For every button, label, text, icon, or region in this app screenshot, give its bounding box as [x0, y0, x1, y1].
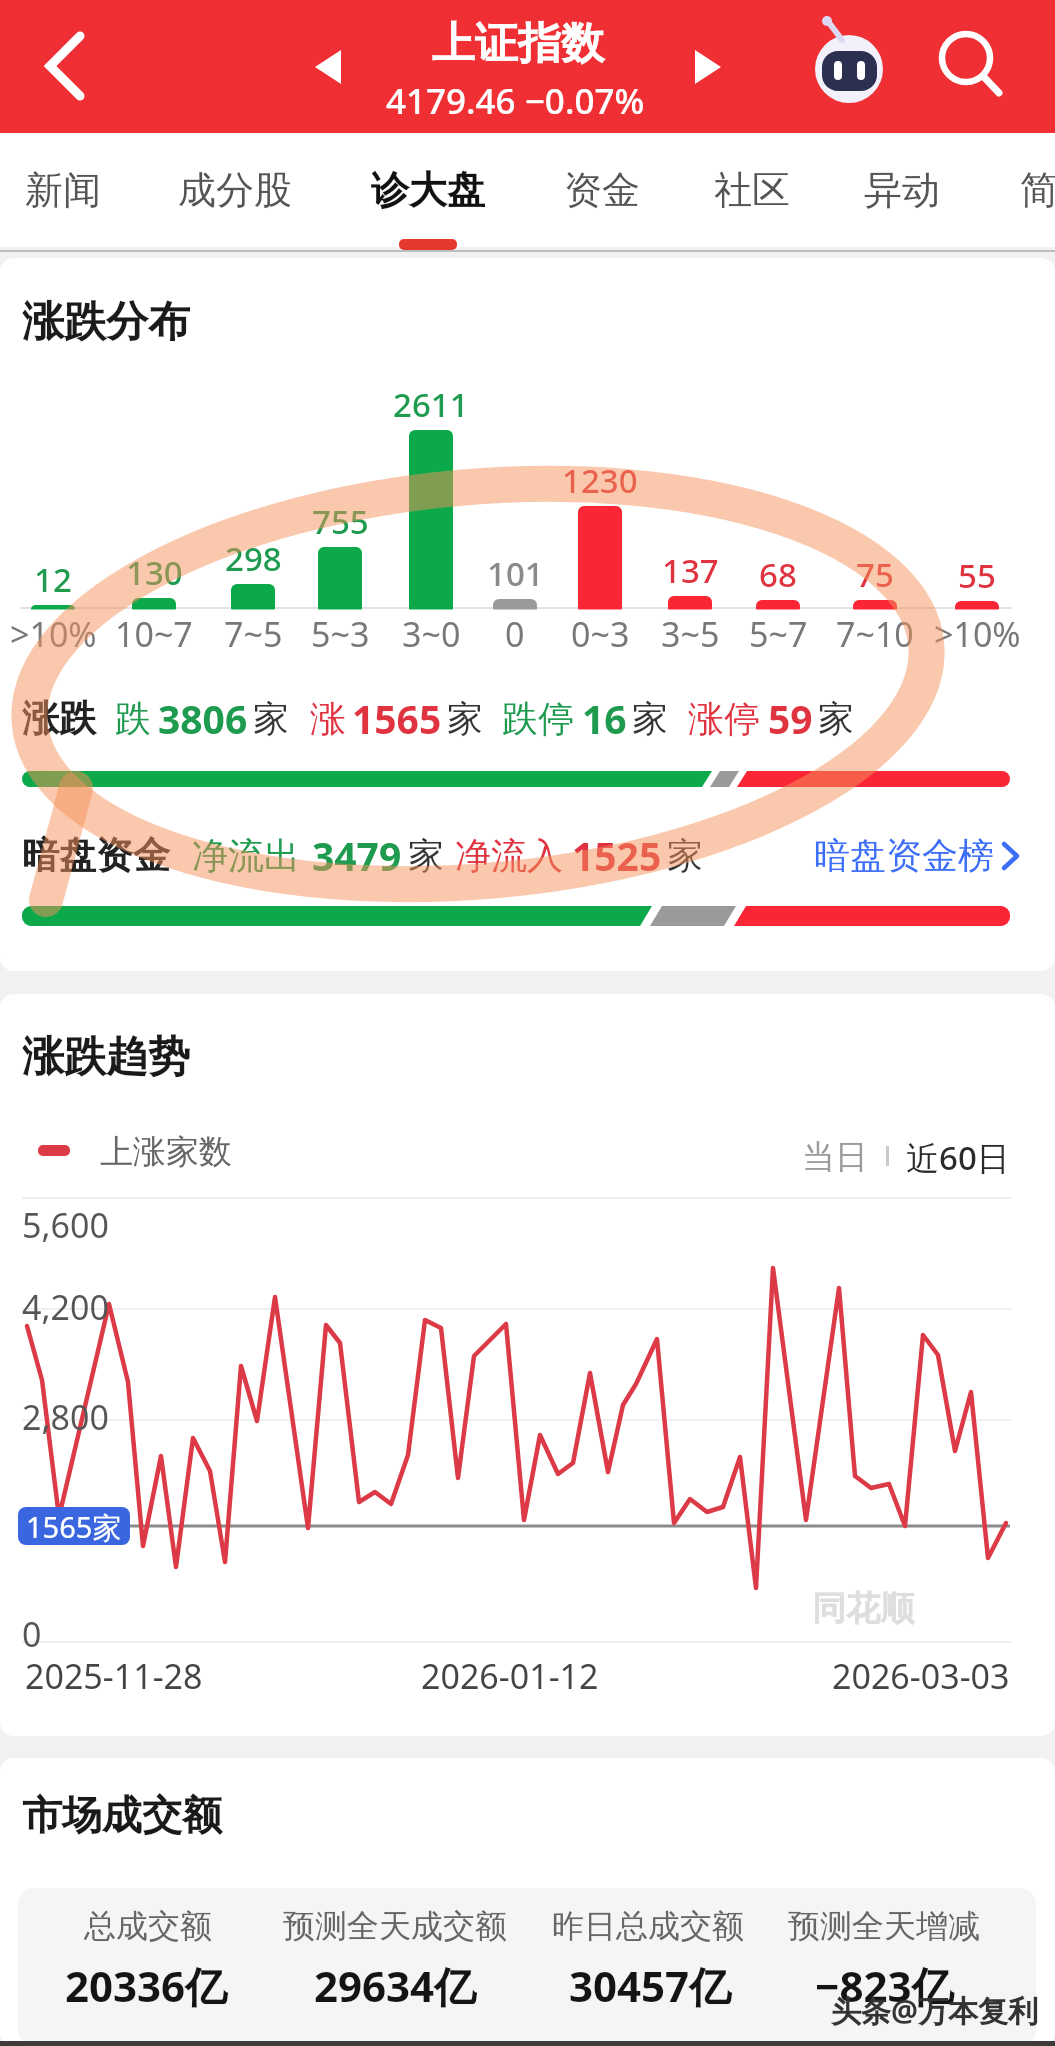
staticText: 0: [22, 1611, 42, 1657]
button[interactable]: [30, 30, 100, 100]
button[interactable]: 新闻: [0, 150, 138, 230]
staticText: 简: [1020, 166, 1055, 214]
staticText: 298: [225, 536, 282, 581]
staticText: 社区: [714, 166, 790, 214]
staticText: 3~0: [402, 611, 461, 657]
staticText: 头条@万本复利: [831, 1990, 1038, 2031]
button[interactable]: [935, 28, 1005, 98]
staticText: 7~5: [224, 611, 283, 657]
staticText: 暗盘资金榜: [814, 833, 994, 878]
button[interactable]: [305, 40, 355, 94]
staticText: 3806: [158, 692, 248, 745]
staticText: 5~3: [311, 611, 370, 657]
staticText: 涨停: [688, 696, 760, 741]
staticText: 家: [818, 696, 854, 741]
staticText: 跌停: [502, 696, 574, 741]
staticText: 4,200: [22, 1284, 109, 1330]
staticText: 2,800: [22, 1394, 109, 1440]
staticText: 2611: [393, 382, 469, 427]
button[interactable]: 成分股: [160, 150, 310, 230]
staticText: 净流出: [192, 833, 300, 878]
staticText: 涨跌趋势: [22, 1031, 190, 1084]
staticText: 上涨家数: [100, 1131, 232, 1173]
staticText: 近60日: [906, 1135, 1010, 1180]
staticText: 上证指数: [432, 17, 604, 71]
button[interactable]: 暗盘资金榜: [800, 825, 1020, 885]
staticText: 同花顺: [812, 1587, 914, 1630]
staticText: 1565: [352, 692, 442, 745]
staticText: 2025-11-28: [25, 1653, 203, 1699]
staticText: 家: [408, 833, 444, 878]
staticText: 12: [34, 557, 72, 602]
staticText: 10~7: [115, 611, 193, 657]
staticText: 7~10: [836, 611, 914, 657]
staticText: 1525: [572, 829, 662, 882]
staticText: 市场成交额: [22, 1790, 222, 1840]
staticText: 5~7: [749, 611, 808, 657]
staticText: −823亿: [815, 1957, 954, 2014]
button[interactable]: 当日: [780, 1127, 890, 1187]
staticText: 涨跌分布: [22, 296, 190, 349]
staticText: 55: [958, 553, 996, 598]
staticText: 2026-03-03: [832, 1653, 1010, 1699]
staticText: 30457亿: [569, 1957, 732, 2014]
staticText: 当日: [802, 1136, 868, 1178]
staticText: >10%: [934, 611, 1021, 657]
staticText: 暗盘资金: [22, 832, 170, 879]
staticText: 成分股: [178, 166, 292, 214]
button[interactable]: [685, 40, 735, 94]
staticText: 137: [662, 548, 719, 593]
staticText: 诊大盘: [371, 166, 485, 214]
staticText: 5,600: [22, 1202, 109, 1248]
staticText: 家: [667, 833, 703, 878]
staticText: 755: [312, 499, 369, 544]
staticText: 4179.46 −0.07%: [386, 77, 645, 125]
button[interactable]: 异动: [827, 150, 977, 230]
button[interactable]: 社区: [677, 150, 827, 230]
staticText: 0: [505, 611, 525, 657]
staticText: 75: [856, 552, 894, 597]
staticText: 3479: [312, 829, 402, 882]
staticText: 家: [447, 696, 483, 741]
staticText: 1230: [562, 458, 638, 503]
staticText: 异动: [864, 166, 940, 214]
staticText: 家: [253, 696, 289, 741]
staticText: 16: [582, 692, 627, 745]
staticText: 昨日总成交额: [552, 1906, 744, 1946]
staticText: 家: [632, 696, 668, 741]
button[interactable]: 诊大盘: [353, 150, 503, 230]
staticText: 2026-01-12: [421, 1653, 599, 1699]
staticText: 跌: [115, 696, 151, 741]
button[interactable]: 近60日: [895, 1127, 1020, 1187]
staticText: 0~3: [571, 611, 630, 657]
staticText: 涨跌: [22, 695, 96, 742]
staticText: 预测全天增减: [788, 1906, 980, 1946]
staticText: 59: [768, 692, 813, 745]
staticText: 涨: [310, 696, 346, 741]
staticText: 101: [487, 551, 544, 596]
staticText: 净流入: [455, 833, 563, 878]
staticText: 3~5: [661, 611, 720, 657]
staticText: 总成交额: [84, 1906, 212, 1946]
button[interactable]: 资金: [527, 150, 677, 230]
staticText: 1565家: [26, 1507, 122, 1545]
staticText: 68: [759, 552, 797, 597]
staticText: 29634亿: [314, 1957, 477, 2014]
button[interactable]: [812, 32, 886, 106]
staticText: 资金: [564, 166, 640, 214]
staticText: 新闻: [25, 166, 101, 214]
staticText: 20336亿: [65, 1957, 228, 2014]
staticText: >10%: [10, 611, 97, 657]
staticText: 预测全天成交额: [283, 1906, 507, 1946]
staticText: 130: [126, 550, 183, 595]
